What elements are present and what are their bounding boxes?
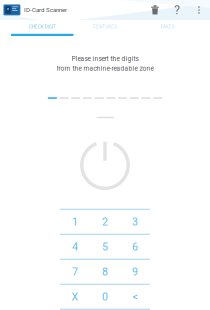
staticText: 0	[102, 291, 108, 303]
button[interactable]: 9	[120, 259, 150, 284]
staticText: 9	[132, 266, 138, 278]
staticText: ?	[174, 3, 180, 17]
staticText: 1	[72, 216, 78, 228]
staticText: 3	[132, 216, 138, 228]
staticText: 4	[72, 241, 78, 253]
staticText: FEATURES	[93, 24, 117, 29]
button[interactable]: More options	[195, 5, 203, 15]
staticText: CHECK DIGIT	[29, 24, 56, 29]
staticText: <	[132, 291, 137, 303]
button[interactable]: FEATURES	[74, 20, 136, 36]
button[interactable]: 1	[60, 209, 90, 234]
staticText: Please insert the digits	[71, 55, 138, 63]
staticText: from the machine-readable zone	[56, 65, 153, 72]
staticText: FAKES	[161, 24, 175, 29]
staticText: 5	[102, 241, 108, 253]
button[interactable]: 4	[60, 234, 90, 259]
staticText: 2	[102, 216, 108, 228]
button[interactable]: <	[120, 284, 150, 309]
button[interactable]: 7	[60, 259, 90, 284]
button[interactable]: Help	[173, 5, 181, 15]
button[interactable]: 2	[90, 209, 120, 234]
button[interactable]: CHECK DIGIT	[11, 20, 74, 36]
button[interactable]: 8	[90, 259, 120, 284]
staticText: 8	[102, 266, 108, 278]
button[interactable]: Delete	[151, 5, 159, 15]
staticText: 7	[72, 266, 78, 278]
button[interactable]: 5	[90, 234, 120, 259]
staticText: 6	[132, 241, 138, 253]
staticText: ID-Card Scanner	[24, 6, 67, 14]
button[interactable]: 6	[120, 234, 150, 259]
staticText: X	[71, 291, 78, 303]
button[interactable]: X	[60, 284, 90, 309]
button[interactable]: 0	[90, 284, 120, 309]
button[interactable]: 3	[120, 209, 150, 234]
button[interactable]: FAKES	[136, 20, 199, 36]
